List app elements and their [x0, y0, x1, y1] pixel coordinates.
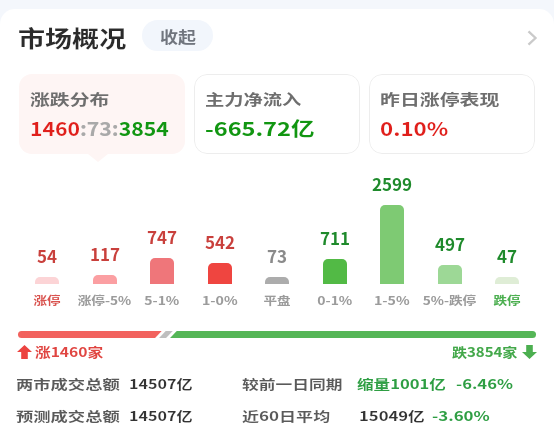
- staticText: 47: [497, 243, 518, 268]
- staticText: 跌停: [493, 292, 521, 308]
- staticText: -6.46%: [456, 374, 513, 393]
- staticText: 15049亿: [359, 406, 426, 425]
- staticText: 0.10%: [380, 114, 449, 142]
- staticText: 14507亿: [129, 374, 193, 393]
- staticText: 市场概况: [18, 20, 126, 53]
- staticText: 平盘: [263, 292, 291, 308]
- staticText: 497: [435, 231, 466, 256]
- staticText: 涨1460家: [35, 342, 103, 361]
- staticText: 54: [37, 243, 58, 268]
- staticText: 涨停: [33, 292, 61, 308]
- staticText: 1460:73:3854: [30, 114, 169, 142]
- staticText: 涨停-5%: [78, 292, 132, 308]
- staticText: 涨跌分布: [30, 88, 111, 110]
- staticText: 1-0%: [202, 292, 238, 308]
- staticText: 较前一日同期: [242, 374, 344, 393]
- staticText: 昨日涨停表现: [380, 88, 501, 110]
- button[interactable]: 市场概况: [18, 20, 110, 53]
- staticText: 5-1%: [144, 292, 180, 308]
- staticText: 跌3854家: [452, 342, 518, 361]
- staticText: 117: [90, 241, 121, 266]
- staticText: 73: [267, 243, 288, 268]
- staticText: 14507亿: [129, 406, 193, 425]
- staticText: 542: [205, 229, 236, 254]
- staticText: 收起: [160, 24, 197, 47]
- staticText: 2599: [372, 171, 413, 196]
- staticText: 711: [320, 225, 351, 250]
- button[interactable]: 涨跌分布: [19, 74, 185, 154]
- button[interactable]: 收起: [142, 20, 213, 51]
- staticText: 主力净流入: [205, 88, 303, 110]
- staticText: 近60日平均: [242, 406, 331, 425]
- staticText: 两市成交总额: [16, 374, 121, 393]
- button[interactable]: Expand market overview: [516, 22, 548, 54]
- staticText: 0-1%: [317, 292, 353, 308]
- button[interactable]: 昨日涨停表现: [369, 74, 535, 154]
- staticText: 5%-跌停: [423, 292, 477, 308]
- staticText: 747: [147, 224, 178, 249]
- button[interactable]: 主力净流入: [194, 74, 360, 154]
- staticText: 缩量1001亿: [357, 374, 446, 393]
- staticText: 1-5%: [374, 292, 410, 308]
- staticText: -665.72亿: [205, 114, 315, 142]
- staticText: -3.60%: [432, 406, 490, 425]
- staticText: 预测成交总额: [16, 406, 121, 425]
